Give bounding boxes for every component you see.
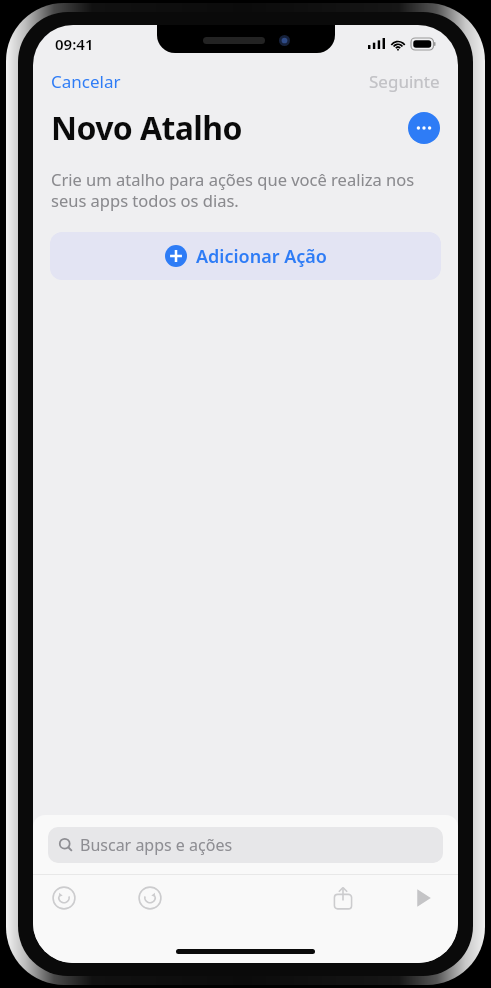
button[interactable]: Cancelar (47, 66, 125, 97)
button[interactable]: Mais opções (408, 112, 440, 144)
staticText: Cancelar (51, 70, 121, 93)
staticText: Adicionar Ação (196, 244, 327, 269)
button[interactable]: Compartilhar (321, 876, 365, 920)
staticText: 09:41 (55, 34, 94, 54)
button[interactable]: Seguinte (365, 66, 444, 97)
staticText: Novo Atalho (51, 106, 242, 150)
button[interactable]: Refazer (128, 876, 172, 920)
button[interactable]: Buscar apps e ações (48, 827, 443, 863)
button[interactable]: Adicionar Ação (50, 232, 441, 280)
staticText: Seguinte (369, 70, 440, 93)
staticText: Buscar apps e ações (80, 834, 233, 856)
button[interactable]: Desfazer (42, 876, 86, 920)
button[interactable]: Reproduzir (401, 876, 445, 920)
staticText: Crie um atalho para ações que você reali… (51, 168, 434, 212)
